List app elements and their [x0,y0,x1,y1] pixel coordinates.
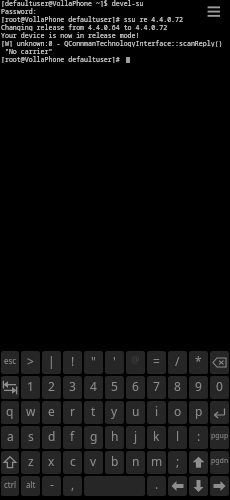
staticText: b [111,453,119,469]
button[interactable]: h [105,426,124,449]
staticText: - [50,476,54,492]
button[interactable]: d [42,426,61,449]
button[interactable]: j [126,426,145,449]
button[interactable]: r [63,401,82,424]
button[interactable]: 5 [105,376,124,399]
button[interactable]: y [105,401,124,424]
staticText: [root@VollaPhone defaultuser]# [1,55,124,63]
button[interactable]: 3 [63,376,82,399]
staticText: o [174,403,182,419]
staticText: j [134,428,138,444]
button[interactable]: ; [168,451,187,474]
staticText: Your device is now in release mode! [1,31,140,39]
button[interactable]: q [1,401,19,424]
button[interactable]: pgup [210,426,229,449]
button[interactable]: t [84,401,103,424]
staticText: w [26,403,36,419]
button[interactable]: Shift [1,451,19,474]
button[interactable]: Down [189,476,208,496]
button[interactable]: / [168,351,187,374]
button[interactable]: f [63,426,82,449]
button[interactable]: esc [1,351,19,374]
button[interactable]: Right [210,476,229,496]
staticText: c [70,453,76,469]
staticText: "No carrier" [1,47,53,55]
button[interactable]: , [63,476,82,496]
button[interactable]: Enter [210,401,229,424]
staticText: : [197,428,201,444]
button[interactable]: pgdn [210,451,229,474]
button[interactable]: ctrl [1,476,19,496]
button[interactable]: 1 [21,376,40,399]
staticText: 0 [216,378,223,394]
staticText: esc [4,355,17,366]
button[interactable]: ' [105,351,124,374]
button[interactable]: - [42,476,61,496]
button[interactable]: > [21,351,40,374]
button[interactable]: n [126,451,145,474]
staticText: _ [133,363,138,374]
staticText: Password: [1,7,37,15]
staticText: 1 [27,378,34,394]
button[interactable]: 8 [168,376,187,399]
button[interactable]: 0 [210,376,229,399]
staticText: i [155,403,159,419]
button[interactable]: p [189,401,208,424]
button[interactable]: c [63,451,82,474]
staticText: 7 [153,378,160,394]
button[interactable]: s [21,426,40,449]
button[interactable]: b [105,451,124,474]
button[interactable]: Menu [204,1,225,22]
button[interactable]: Tab [1,376,19,399]
button[interactable]: ! [63,351,82,374]
staticText: = [153,353,160,369]
staticText: y [111,403,118,419]
button[interactable]: 4 [84,376,103,399]
staticText: > [27,353,34,369]
button[interactable]: 6 [126,376,145,399]
button[interactable]: " [84,351,103,374]
button[interactable]: z [21,451,40,474]
button[interactable]: w [21,401,40,424]
staticText: 3 [69,378,76,394]
button[interactable]: = [147,351,166,374]
button[interactable]: * [189,351,208,374]
button[interactable]: o [168,401,187,424]
staticText: [defaultuser@VollaPhone ~]$ devel-su [1,0,144,7]
button[interactable]: 2 [42,376,61,399]
button[interactable]: g [84,426,103,449]
button[interactable]: e [42,401,61,424]
staticText: 5 [111,378,118,394]
button[interactable]: v [84,451,103,474]
button[interactable]: u [126,401,145,424]
button[interactable]: 7 [147,376,166,399]
staticText: Changing release from 4.4.0.64 to 4.4.0.… [1,23,168,31]
staticText: m [151,453,163,469]
button[interactable]: l [168,426,187,449]
staticText: 6 [132,378,139,394]
staticText: f [70,428,75,444]
staticText: alt [26,479,36,490]
button[interactable]: Backspace [210,351,229,374]
staticText: [root@VollaPhone defaultuser]# ssu re 4.… [1,15,183,23]
staticText: pgdn [211,456,229,466]
staticText: a [7,428,14,444]
button[interactable]: | [42,351,61,374]
staticText: g [90,428,98,444]
staticText: z [28,453,34,469]
button[interactable]: m [147,451,166,474]
button[interactable]: a [1,426,19,449]
staticText: ! [71,353,75,369]
button[interactable]: @ [126,351,145,374]
button[interactable]: i [147,401,166,424]
button[interactable]: k [147,426,166,449]
staticText: v [90,453,97,469]
button[interactable]: x [42,451,61,474]
button[interactable]: Shift lock [189,451,208,474]
button[interactable]: Left [168,476,187,496]
button[interactable]: . [147,476,166,496]
button[interactable]: : [189,426,208,449]
button[interactable]: 9 [189,376,208,399]
button[interactable]: alt [21,476,40,496]
